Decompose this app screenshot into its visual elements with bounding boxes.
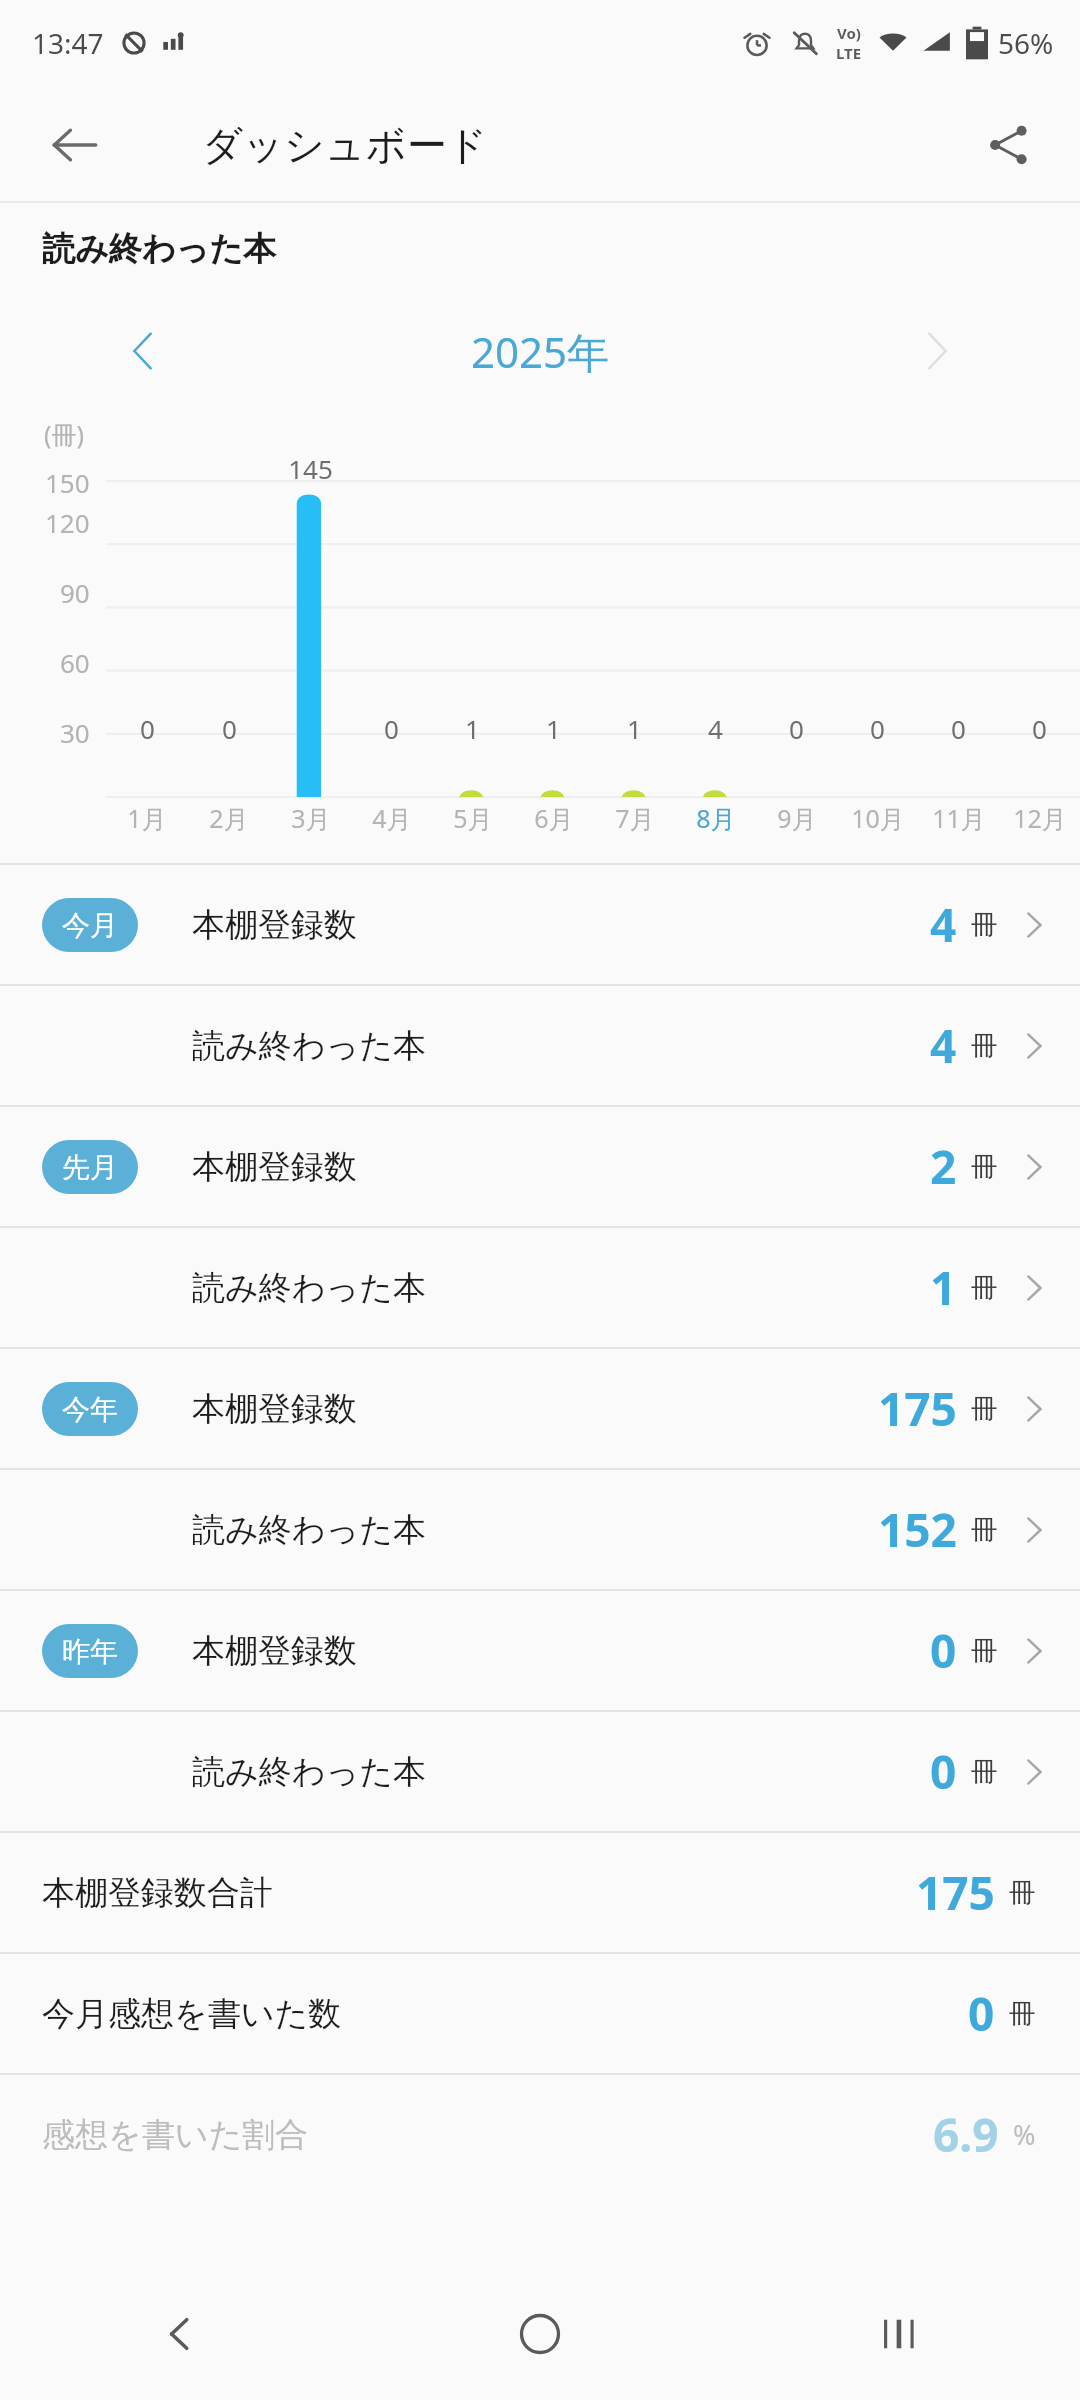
staticText: 3月	[291, 801, 331, 835]
button[interactable]: 読み終わった本	[0, 1712, 1080, 1831]
button[interactable]: Recent apps	[850, 2284, 950, 2384]
staticText: 56%	[998, 24, 1054, 62]
button[interactable]: 本棚登録数合計	[0, 1833, 1080, 1952]
staticText: 感想を書いた割合	[42, 2114, 309, 2156]
staticText: 冊	[971, 1150, 998, 1184]
staticText: 175	[878, 1377, 957, 1440]
staticText: 読み終わった本	[192, 1509, 427, 1551]
staticText: 175	[916, 1861, 995, 1924]
staticText: 読み終わった本	[192, 1025, 427, 1067]
staticText: 11月	[932, 801, 986, 835]
staticText: 7月	[615, 801, 655, 835]
button[interactable]: Back	[42, 112, 108, 178]
staticText: 冊	[971, 1513, 998, 1547]
staticText: 8月	[696, 801, 736, 835]
staticText: 9月	[777, 801, 817, 835]
staticText: 0	[140, 711, 155, 746]
staticText: 0	[930, 1740, 957, 1803]
staticText: ダッシュボード	[202, 120, 488, 170]
staticText: 2025年	[471, 323, 610, 380]
staticText: 145	[288, 451, 333, 486]
staticText: 先月	[62, 1150, 118, 1185]
staticText: 1	[546, 711, 561, 746]
staticText: 0	[870, 711, 885, 746]
button[interactable]: 今月	[0, 865, 1080, 984]
staticText: 4月	[372, 801, 412, 835]
staticText: 4	[930, 893, 957, 956]
button[interactable]: 昨年	[0, 1591, 1080, 1710]
staticText: 152	[878, 1498, 957, 1561]
button[interactable]: Home	[490, 2284, 590, 2384]
staticText: 本棚登録数	[192, 1388, 357, 1430]
staticText: 冊	[1009, 1876, 1036, 1910]
staticText: 0	[1032, 711, 1047, 746]
staticText: 5月	[453, 801, 493, 835]
button[interactable]: Next year	[900, 315, 972, 387]
button[interactable]: Share	[976, 112, 1042, 178]
button[interactable]: 読み終わった本	[0, 1228, 1080, 1347]
staticText: 0	[222, 711, 237, 746]
staticText: 1月	[127, 801, 167, 835]
staticText: 冊	[1009, 1997, 1036, 2031]
staticText: 150	[45, 465, 90, 500]
staticText: 今月	[62, 908, 118, 943]
staticText: 冊	[971, 1755, 998, 1789]
staticText: 読み終わった本	[192, 1267, 427, 1309]
staticText: 4	[930, 1014, 957, 1077]
button[interactable]: Previous year	[108, 315, 180, 387]
button[interactable]: Back	[130, 2284, 230, 2384]
button[interactable]: 感想を書いた割合	[0, 2075, 1080, 2194]
staticText: 0	[384, 711, 399, 746]
button[interactable]: 読み終わった本	[0, 986, 1080, 1105]
staticText: 今年	[62, 1392, 118, 1427]
staticText: 1	[930, 1256, 957, 1319]
staticText: 1	[627, 711, 642, 746]
staticText: 読み終わった本	[42, 228, 277, 270]
staticText: 本棚登録数	[192, 1146, 357, 1188]
staticText: 2	[930, 1135, 957, 1198]
button[interactable]: 読み終わった本	[0, 1470, 1080, 1589]
staticText: 冊	[971, 1634, 998, 1668]
staticText: 0	[951, 711, 966, 746]
button[interactable]: 今年	[0, 1349, 1080, 1468]
staticText: 1	[465, 711, 480, 746]
staticText: 90	[60, 575, 90, 610]
staticText: 12月	[1013, 801, 1067, 835]
staticText: 0	[968, 1982, 995, 2045]
staticText: 0	[930, 1619, 957, 1682]
staticText: 4	[708, 711, 723, 746]
staticText: 6月	[534, 801, 574, 835]
staticText: Vo)	[837, 23, 861, 43]
staticText: 本棚登録数	[192, 1630, 357, 1672]
button[interactable]: 先月	[0, 1107, 1080, 1226]
staticText: 10月	[851, 801, 905, 835]
button[interactable]: 今月感想を書いた数	[0, 1954, 1080, 2073]
staticText: (冊)	[44, 417, 85, 451]
staticText: 0	[789, 711, 804, 746]
staticText: 30	[60, 715, 90, 750]
staticText: LTE	[836, 43, 862, 63]
staticText: 昨年	[62, 1634, 118, 1669]
staticText: 冊	[971, 1029, 998, 1063]
staticText: 120	[45, 505, 90, 540]
staticText: 冊	[971, 1271, 998, 1305]
staticText: 読み終わった本	[192, 1751, 427, 1793]
staticText: 2月	[209, 801, 249, 835]
staticText: 冊	[971, 908, 998, 942]
staticText: %	[1013, 2116, 1036, 2153]
staticText: 60	[60, 645, 90, 680]
staticText: 本棚登録数合計	[42, 1872, 273, 1914]
staticText: 冊	[971, 1392, 998, 1426]
staticText: 今月感想を書いた数	[42, 1993, 342, 2035]
staticText: 13:47	[32, 24, 104, 62]
staticText: 本棚登録数	[192, 904, 357, 946]
staticText: 6.9	[933, 2103, 999, 2166]
